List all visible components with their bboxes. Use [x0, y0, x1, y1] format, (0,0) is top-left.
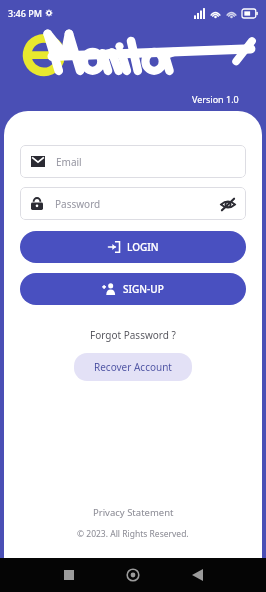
button[interactable]: SIGN-UP	[20, 273, 246, 305]
staticText: Password	[55, 197, 101, 211]
button[interactable]: Back	[184, 562, 210, 588]
button[interactable]: Home	[120, 562, 146, 588]
staticText: Email	[56, 155, 82, 169]
staticText: SIGN-UP	[123, 282, 164, 296]
button[interactable]: Recent apps	[56, 562, 82, 588]
button[interactable]: Password	[20, 187, 246, 220]
staticText: Recover Account	[94, 360, 172, 374]
button[interactable]: Privacy Statement	[93, 506, 174, 519]
staticText: Version 1.0	[192, 93, 239, 105]
button[interactable]: Email	[20, 145, 246, 178]
button[interactable]: Forgot Password ?	[90, 328, 176, 342]
button[interactable]: Show password	[219, 195, 237, 213]
staticText: © 2023. All Rights Reserved.	[77, 528, 189, 540]
button[interactable]: Recover Account	[74, 353, 192, 381]
staticText: LOGIN	[127, 240, 159, 254]
button[interactable]: LOGIN	[20, 231, 246, 263]
staticText: 3:46 PM	[8, 7, 42, 19]
